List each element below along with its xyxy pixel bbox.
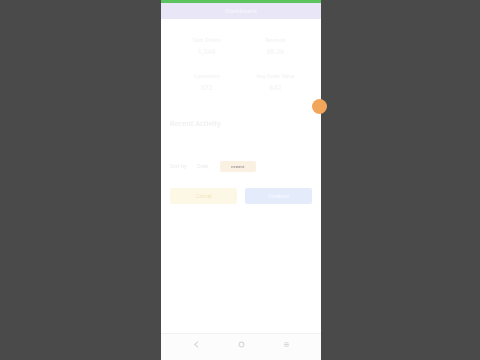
staticText: 372 xyxy=(200,83,213,93)
staticText: Date xyxy=(197,163,209,170)
button[interactable]: Cancel xyxy=(170,188,237,204)
staticText: 1,248 xyxy=(197,47,216,57)
staticText: Cancel xyxy=(196,193,212,200)
button[interactable]: Back xyxy=(186,334,206,354)
staticText: $8.2k xyxy=(266,47,285,57)
staticText: Continue xyxy=(268,193,290,200)
button[interactable]: Add xyxy=(312,99,327,114)
staticText: Sort by xyxy=(170,163,187,170)
staticText: Recent Activity xyxy=(170,119,221,129)
staticText: Total Orders xyxy=(192,37,221,44)
staticText: Avg Order Value xyxy=(256,73,295,80)
staticText: Customers xyxy=(194,73,220,80)
button[interactable]: Recent apps xyxy=(276,334,296,354)
staticText: newest xyxy=(231,164,245,169)
button[interactable]: Home xyxy=(231,334,251,354)
staticText: Revenue xyxy=(265,37,286,44)
button[interactable]: Total Orders xyxy=(166,21,316,109)
button[interactable]: newest xyxy=(220,161,256,172)
staticText: Dashboard xyxy=(225,7,257,15)
staticText: $42 xyxy=(269,83,282,93)
